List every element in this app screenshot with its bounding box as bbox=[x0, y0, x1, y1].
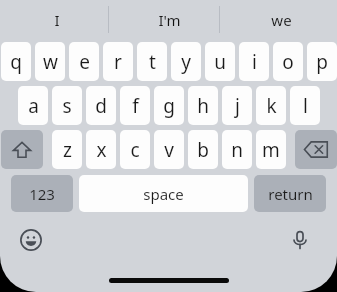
staticText: r bbox=[114, 49, 122, 75]
button[interactable]: i bbox=[239, 42, 269, 81]
button[interactable]: Backspace bbox=[295, 130, 337, 169]
staticText: g bbox=[163, 93, 175, 119]
staticText: u bbox=[214, 49, 226, 75]
staticText: h bbox=[197, 93, 209, 119]
staticText: q bbox=[10, 49, 22, 75]
button[interactable]: m bbox=[256, 130, 286, 169]
staticText: k bbox=[266, 93, 277, 119]
button[interactable]: k bbox=[256, 86, 286, 125]
button[interactable]: x bbox=[86, 130, 116, 169]
button[interactable]: y bbox=[171, 42, 201, 81]
staticText: j bbox=[235, 93, 240, 119]
staticText: b bbox=[197, 137, 209, 163]
button[interactable]: t bbox=[137, 42, 167, 81]
staticText: f bbox=[132, 93, 139, 119]
button[interactable]: b bbox=[188, 130, 218, 169]
button[interactable]: 123 bbox=[11, 175, 73, 212]
button[interactable]: p bbox=[307, 42, 337, 81]
staticText: d bbox=[95, 93, 107, 119]
button[interactable]: j bbox=[222, 86, 252, 125]
staticText: we bbox=[271, 10, 292, 30]
button[interactable]: return bbox=[254, 175, 326, 212]
staticText: x bbox=[96, 137, 107, 163]
button[interactable]: we bbox=[225, 0, 337, 40]
button[interactable]: u bbox=[205, 42, 235, 81]
staticText: v bbox=[164, 137, 174, 163]
staticText: z bbox=[63, 137, 72, 163]
staticText: y bbox=[181, 49, 191, 75]
button[interactable]: a bbox=[18, 86, 48, 125]
staticText: e bbox=[79, 49, 90, 75]
button[interactable]: q bbox=[1, 42, 31, 81]
staticText: s bbox=[62, 93, 72, 119]
staticText: return bbox=[268, 184, 313, 204]
button[interactable]: c bbox=[120, 130, 150, 169]
staticText: 123 bbox=[29, 184, 55, 204]
button[interactable]: Shift bbox=[1, 130, 43, 169]
staticText: I bbox=[54, 10, 60, 30]
button[interactable]: Dictation bbox=[285, 225, 315, 255]
button[interactable]: f bbox=[120, 86, 150, 125]
staticText: c bbox=[130, 137, 140, 163]
staticText: l bbox=[303, 93, 308, 119]
staticText: o bbox=[282, 49, 294, 75]
button[interactable]: r bbox=[103, 42, 133, 81]
button[interactable]: h bbox=[188, 86, 218, 125]
button[interactable]: s bbox=[52, 86, 82, 125]
staticText: w bbox=[43, 49, 58, 75]
staticText: n bbox=[231, 137, 243, 163]
button[interactable]: v bbox=[154, 130, 184, 169]
button[interactable]: e bbox=[69, 42, 99, 81]
button[interactable]: I bbox=[0, 0, 113, 40]
button[interactable]: Emoji keyboard bbox=[16, 225, 46, 255]
button[interactable]: space bbox=[79, 175, 248, 212]
staticText: p bbox=[316, 49, 328, 75]
staticText: a bbox=[28, 93, 39, 119]
staticText: m bbox=[262, 137, 280, 163]
staticText: t bbox=[149, 49, 156, 75]
button[interactable]: w bbox=[35, 42, 65, 81]
button[interactable]: z bbox=[52, 130, 82, 169]
button[interactable]: d bbox=[86, 86, 116, 125]
button[interactable]: o bbox=[273, 42, 303, 81]
button[interactable]: n bbox=[222, 130, 252, 169]
staticText: space bbox=[143, 184, 184, 204]
button[interactable]: l bbox=[290, 86, 320, 125]
staticText: I'm bbox=[158, 10, 181, 30]
button[interactable]: g bbox=[154, 86, 184, 125]
button[interactable]: I'm bbox=[113, 0, 225, 40]
staticText: i bbox=[252, 49, 257, 75]
